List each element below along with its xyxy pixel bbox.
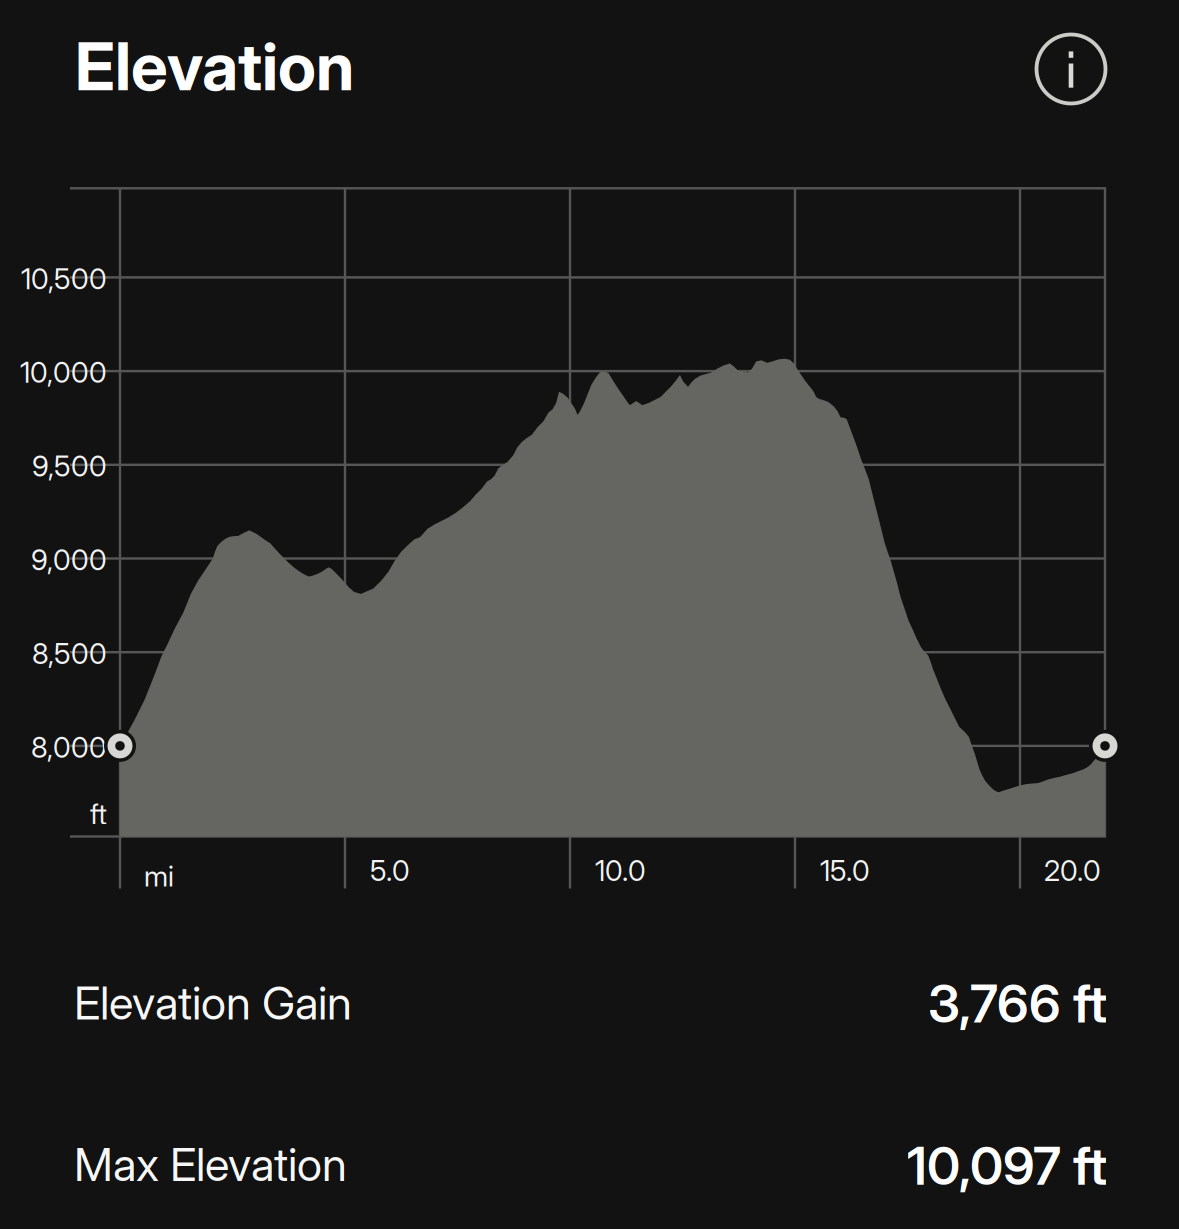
staticText: 20.0 (1044, 853, 1101, 888)
staticText: 10.0 (595, 853, 646, 888)
staticText: 9,500 (32, 449, 107, 483)
staticText: ft (90, 797, 107, 831)
staticText: 8,500 (32, 636, 107, 671)
staticText: 5.0 (370, 853, 410, 888)
staticText: 9,000 (31, 542, 107, 577)
staticText: 10,000 (20, 355, 107, 390)
staticText: 3,766 ft (928, 972, 1107, 1035)
staticText: 10,500 (21, 261, 107, 296)
staticText: 10,097 ft (907, 1134, 1107, 1197)
staticText: 15.0 (820, 853, 870, 888)
staticText: mi (144, 859, 174, 893)
staticText: Elevation (75, 27, 354, 106)
staticText: 8,000 (31, 730, 107, 765)
button[interactable]: Info (1025, 23, 1117, 115)
staticText: Elevation Gain (74, 976, 352, 1030)
staticText: Max Elevation (74, 1137, 347, 1192)
